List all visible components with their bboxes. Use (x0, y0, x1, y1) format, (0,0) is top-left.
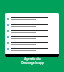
staticText: Agenda cita (24, 57, 41, 61)
staticText: Descarga la app (21, 61, 44, 65)
